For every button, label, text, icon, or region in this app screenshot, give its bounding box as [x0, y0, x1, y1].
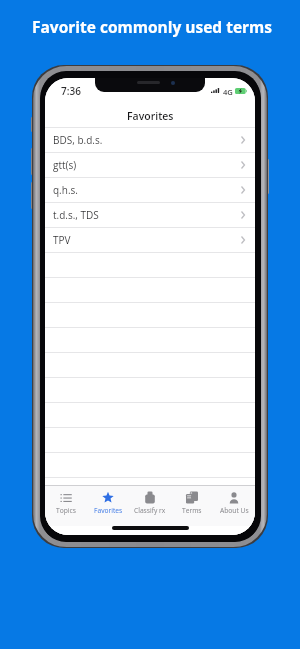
- staticText: Favorites: [127, 109, 174, 123]
- staticText: 4G: [223, 87, 233, 97]
- staticText: About Us: [220, 506, 249, 515]
- staticText: Terms: [182, 506, 202, 515]
- button[interactable]: Favorites: [87, 486, 129, 526]
- staticText: Classify rx: [134, 506, 166, 515]
- staticText: t.d.s., TDS: [53, 208, 99, 222]
- button[interactable]: About Us: [213, 486, 255, 526]
- staticText: gtt(s): [53, 158, 77, 172]
- staticText: Favorites: [94, 506, 123, 515]
- staticText: Favorite commonly used terms: [2, 16, 300, 37]
- staticText: 7:36: [61, 84, 81, 98]
- staticText: Topics: [56, 506, 76, 515]
- button[interactable]: Topics: [45, 486, 87, 526]
- button[interactable]: gtt(s): [45, 153, 255, 178]
- button[interactable]: TPV: [45, 228, 255, 253]
- button[interactable]: BDS, b.d.s.: [45, 128, 255, 153]
- staticText: q.h.s.: [53, 183, 78, 197]
- button[interactable]: q.h.s.: [45, 178, 255, 203]
- staticText: BDS, b.d.s.: [53, 133, 103, 147]
- button[interactable]: Classify rx: [129, 486, 171, 526]
- button[interactable]: t.d.s., TDS: [45, 203, 255, 228]
- button[interactable]: Terms: [171, 486, 213, 526]
- staticText: TPV: [53, 233, 71, 247]
